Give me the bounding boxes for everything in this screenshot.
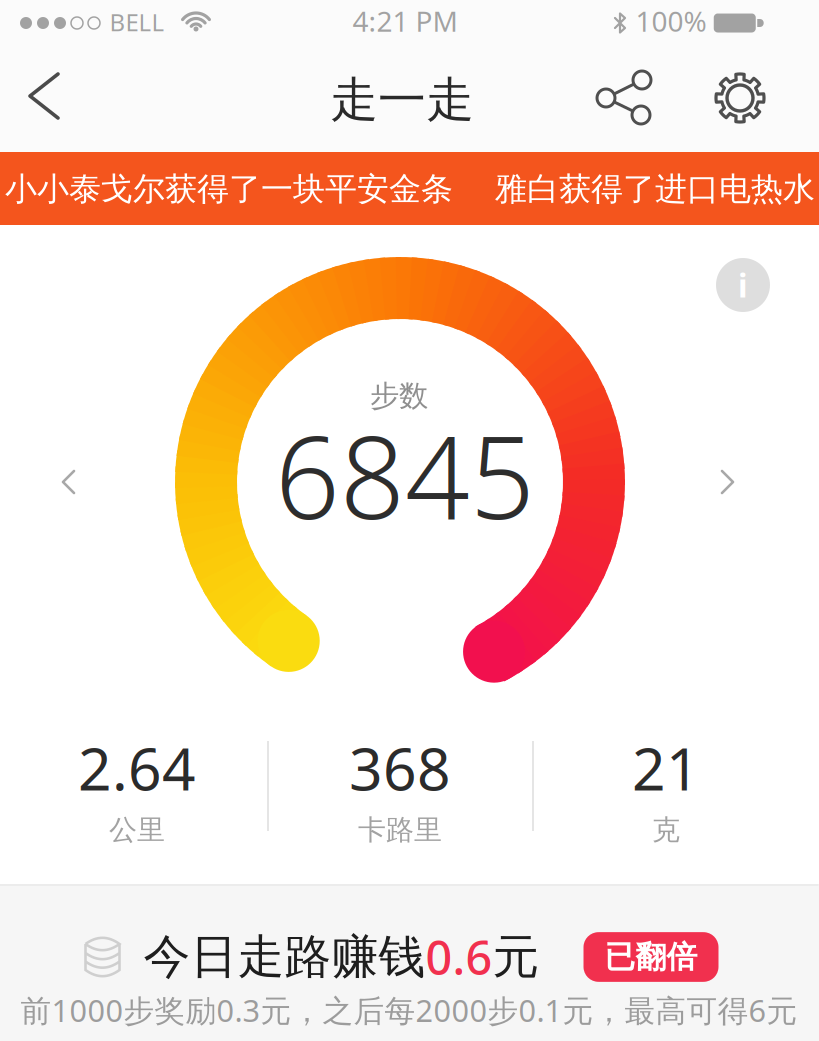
staticText: 前1000步奖励0.3元，之后每2000步0.1元，最高可得6元 <box>20 990 797 1030</box>
staticText: 21 <box>632 729 700 807</box>
staticText: 小小泰戈尔获得了一块平安金条 雅白获得了进口电热水 <box>5 169 815 209</box>
staticText: 克 <box>652 813 680 847</box>
staticText: 100% <box>635 2 706 40</box>
staticText: 今日走路赚钱 <box>143 928 425 986</box>
staticText: i <box>738 264 748 306</box>
button[interactable]: 后一天 <box>718 468 738 496</box>
button[interactable]: 今日走路赚钱 <box>81 926 718 988</box>
staticText: 公里 <box>109 813 165 847</box>
button[interactable]: 前一天 <box>58 468 78 496</box>
button[interactable]: Back <box>22 70 74 122</box>
staticText: 卡路里 <box>358 813 442 847</box>
button[interactable]: 奖励公告 <box>0 152 819 225</box>
staticText: 已翻倍 <box>604 938 697 976</box>
staticText: 0.6 <box>425 926 492 988</box>
button[interactable]: Settings <box>708 66 772 130</box>
staticText: 368 <box>349 729 451 807</box>
staticText: 4:21 PM <box>352 2 457 40</box>
button[interactable]: Share <box>592 66 656 130</box>
staticText: 步数 <box>370 378 428 414</box>
staticText: 走一走 <box>330 70 474 129</box>
button[interactable]: 信息 <box>716 258 770 312</box>
staticText: BELL <box>109 6 164 38</box>
staticText: 元 <box>492 928 539 986</box>
staticText: 2.64 <box>78 729 196 807</box>
staticText: 6845 <box>275 400 535 550</box>
